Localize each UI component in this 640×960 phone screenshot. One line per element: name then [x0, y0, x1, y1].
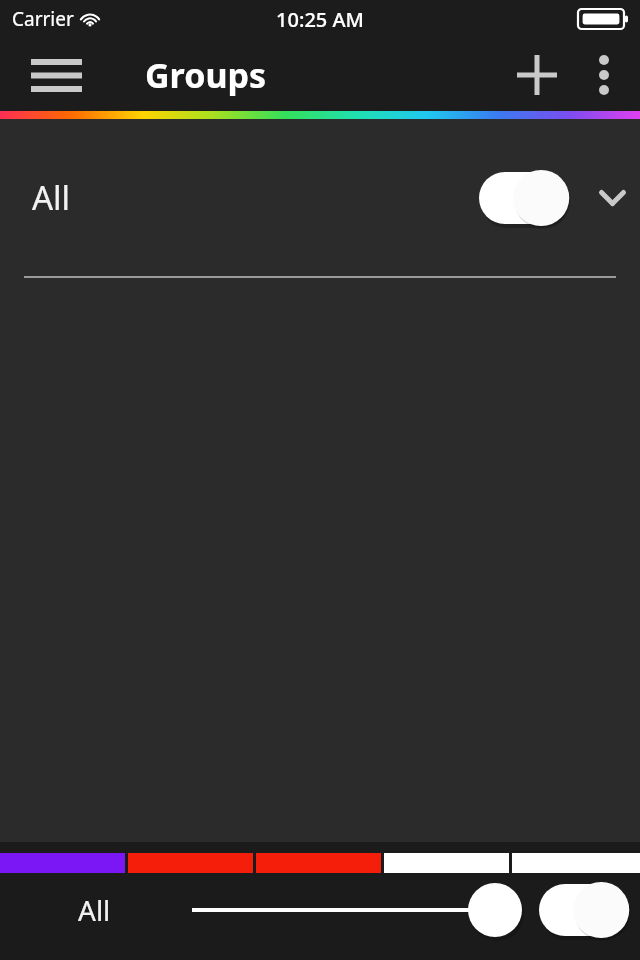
button[interactable]: Toggle all groups — [472, 165, 573, 231]
button[interactable]: Brightness slider — [180, 878, 525, 942]
staticText: 10:25 AM — [276, 6, 364, 33]
button[interactable]: Expand — [584, 170, 640, 226]
button[interactable]: Add group — [506, 44, 568, 106]
button[interactable]: Toggle output — [534, 878, 632, 942]
staticText: All — [78, 891, 111, 929]
staticText: Carrier — [12, 6, 74, 32]
staticText: Groups — [145, 52, 267, 98]
button[interactable]: Menu — [26, 47, 86, 103]
button[interactable]: All — [0, 119, 640, 276]
staticText: All — [32, 175, 71, 220]
button[interactable]: More options — [568, 44, 640, 106]
